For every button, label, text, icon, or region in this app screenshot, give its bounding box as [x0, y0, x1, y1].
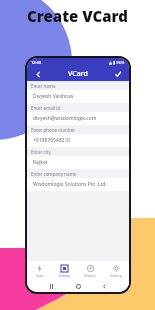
staticText: Setting	[110, 273, 122, 278]
button[interactable]: Create	[52, 261, 77, 281]
staticText: Enter phone number	[31, 127, 76, 133]
staticText: Enter company name	[31, 171, 77, 177]
staticText: Enter email id	[31, 105, 61, 111]
staticText: Wisdomlogix Solutions Pvt. Ltd.	[33, 181, 107, 188]
staticText: Rajkot	[33, 159, 48, 166]
button[interactable]: +919876543210	[27, 134, 129, 147]
staticText: Divyesh Vaishnav	[33, 93, 74, 100]
button[interactable]: Save	[112, 68, 124, 80]
staticText: Enter city	[31, 149, 51, 155]
button[interactable]: History	[77, 261, 103, 281]
button[interactable]: Setting	[103, 261, 129, 281]
button[interactable]: Divyesh Vaishnav	[27, 90, 129, 103]
staticText: Create	[59, 273, 70, 278]
staticText: Create VCard	[27, 6, 128, 26]
button[interactable]: Scan	[27, 261, 52, 281]
staticText: VCard	[68, 69, 88, 79]
staticText: +919876543210	[33, 137, 71, 144]
staticText: ▲ ▮ 96%	[109, 60, 125, 65]
button[interactable]: Back	[32, 68, 44, 80]
staticText: 12:08	[31, 60, 42, 65]
button[interactable]: Rajkot	[27, 156, 129, 169]
staticText: Enter name	[31, 83, 56, 89]
button[interactable]: divyesh@wisdomlogix.com	[27, 112, 129, 125]
staticText: History	[84, 273, 96, 278]
button[interactable]: Wisdomlogix Solutions Pvt. Ltd.	[27, 178, 129, 191]
staticText: divyesh@wisdomlogix.com	[33, 115, 97, 122]
staticText: Scan	[36, 273, 44, 278]
